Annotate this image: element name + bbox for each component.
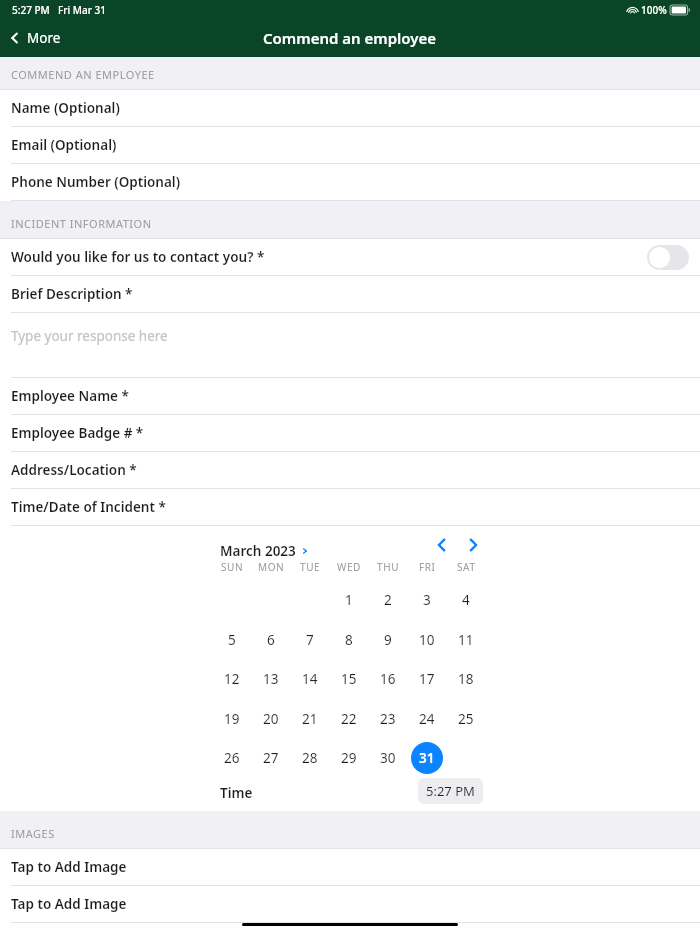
button[interactable]: 3 bbox=[411, 584, 443, 616]
button[interactable]: 26 bbox=[216, 742, 248, 774]
staticText: 17 bbox=[419, 670, 435, 688]
button[interactable]: 22 bbox=[333, 703, 365, 735]
button[interactable]: 24 bbox=[411, 703, 443, 735]
staticText: 24 bbox=[419, 710, 435, 728]
button[interactable]: 25 bbox=[450, 703, 482, 735]
staticText: 16 bbox=[380, 670, 396, 688]
staticText: Name (Optional) bbox=[11, 99, 120, 117]
staticText: 5:27 PM bbox=[426, 782, 475, 800]
staticText: Fri Mar 31 bbox=[58, 3, 106, 17]
button[interactable]: 18 bbox=[450, 663, 482, 695]
button[interactable]: Contact you toggle bbox=[647, 245, 689, 270]
staticText: INCIDENT INFORMATION bbox=[11, 216, 152, 231]
staticText: 14 bbox=[302, 670, 318, 688]
staticText: 1 bbox=[345, 591, 353, 609]
button[interactable]: Employee Badge # * bbox=[0, 415, 700, 452]
staticText: Type your response here bbox=[11, 327, 168, 345]
button[interactable]: Brief Description * bbox=[0, 276, 700, 313]
staticText: 3 bbox=[423, 591, 431, 609]
staticText: 2 bbox=[384, 591, 392, 609]
button[interactable]: 10 bbox=[411, 624, 443, 656]
staticText: SAT bbox=[457, 560, 476, 574]
staticText: 23 bbox=[380, 710, 396, 728]
staticText: Tap to Add Image bbox=[11, 858, 127, 876]
staticText: 13 bbox=[263, 670, 279, 688]
button[interactable]: Would you like for us to contact you? * bbox=[0, 239, 700, 276]
button[interactable]: 19 bbox=[216, 703, 248, 735]
button[interactable]: Time/Date of Incident * bbox=[0, 489, 700, 526]
staticText: 29 bbox=[341, 749, 357, 767]
button[interactable]: Tap to Add Image bbox=[0, 886, 700, 923]
staticText: 5:27 PM bbox=[12, 3, 50, 17]
button[interactable]: Employee Name * bbox=[0, 378, 700, 415]
button[interactable]: 12 bbox=[216, 663, 248, 695]
staticText: 25 bbox=[458, 710, 474, 728]
button[interactable]: 21 bbox=[294, 703, 326, 735]
staticText: IMAGES bbox=[11, 826, 55, 841]
staticText: 21 bbox=[302, 710, 318, 728]
staticText: March 2023 bbox=[220, 542, 296, 560]
button[interactable]: 31 bbox=[411, 742, 443, 774]
staticText: 12 bbox=[224, 670, 240, 688]
button[interactable]: Previous month bbox=[431, 534, 453, 556]
button[interactable]: 20 bbox=[255, 703, 287, 735]
button[interactable]: Address/Location * bbox=[0, 452, 700, 489]
button[interactable]: Type your response here bbox=[0, 313, 700, 378]
button[interactable]: Name (Optional) bbox=[0, 90, 700, 127]
staticText: 8 bbox=[345, 631, 353, 649]
staticText: Employee Name * bbox=[11, 387, 129, 405]
button[interactable]: 13 bbox=[255, 663, 287, 695]
button[interactable]: 7 bbox=[294, 624, 326, 656]
staticText: 31 bbox=[419, 749, 435, 767]
staticText: 11 bbox=[458, 631, 474, 649]
staticText: 7 bbox=[306, 631, 314, 649]
button[interactable]: 4 bbox=[450, 584, 482, 616]
button[interactable]: Tap to Add Image bbox=[0, 849, 700, 886]
staticText: THU bbox=[377, 560, 400, 574]
staticText: COMMEND AN EMPLOYEE bbox=[11, 67, 155, 82]
button[interactable]: 2 bbox=[372, 584, 404, 616]
button[interactable]: 14 bbox=[294, 663, 326, 695]
button[interactable]: 27 bbox=[255, 742, 287, 774]
button[interactable]: 23 bbox=[372, 703, 404, 735]
staticText: 18 bbox=[458, 670, 474, 688]
button[interactable]: More bbox=[0, 23, 71, 53]
staticText: WED bbox=[337, 560, 361, 574]
staticText: 9 bbox=[384, 631, 392, 649]
button[interactable]: 1 bbox=[333, 584, 365, 616]
staticText: More bbox=[27, 29, 61, 47]
staticText: Phone Number (Optional) bbox=[11, 173, 181, 191]
staticText: 6 bbox=[267, 631, 275, 649]
staticText: 5 bbox=[228, 631, 236, 649]
button[interactable]: 17 bbox=[411, 663, 443, 695]
staticText: 4 bbox=[462, 591, 470, 609]
staticText: 20 bbox=[263, 710, 279, 728]
button[interactable]: Email (Optional) bbox=[0, 127, 700, 164]
button[interactable]: 8 bbox=[333, 624, 365, 656]
staticText: 100% bbox=[641, 3, 667, 17]
button[interactable]: 6 bbox=[255, 624, 287, 656]
button[interactable]: March 2023 bbox=[220, 542, 310, 560]
staticText: Brief Description * bbox=[11, 285, 133, 303]
staticText: SUN bbox=[221, 560, 244, 574]
button[interactable]: 15 bbox=[333, 663, 365, 695]
staticText: Address/Location * bbox=[11, 461, 137, 479]
staticText: TUE bbox=[300, 560, 321, 574]
staticText: MON bbox=[258, 560, 285, 574]
button[interactable]: 29 bbox=[333, 742, 365, 774]
button[interactable]: 5:27 PM bbox=[418, 778, 483, 804]
button[interactable]: Next month bbox=[462, 534, 484, 556]
button[interactable]: 5 bbox=[216, 624, 248, 656]
button[interactable]: 30 bbox=[372, 742, 404, 774]
button[interactable]: Phone Number (Optional) bbox=[0, 164, 700, 201]
staticText: 15 bbox=[341, 670, 357, 688]
button[interactable]: 16 bbox=[372, 663, 404, 695]
staticText: 10 bbox=[419, 631, 435, 649]
staticText: 26 bbox=[224, 749, 240, 767]
staticText: 22 bbox=[341, 710, 357, 728]
button[interactable]: 9 bbox=[372, 624, 404, 656]
staticText: Commend an employee bbox=[263, 28, 437, 48]
button[interactable]: 28 bbox=[294, 742, 326, 774]
staticText: FRI bbox=[419, 560, 436, 574]
button[interactable]: 11 bbox=[450, 624, 482, 656]
